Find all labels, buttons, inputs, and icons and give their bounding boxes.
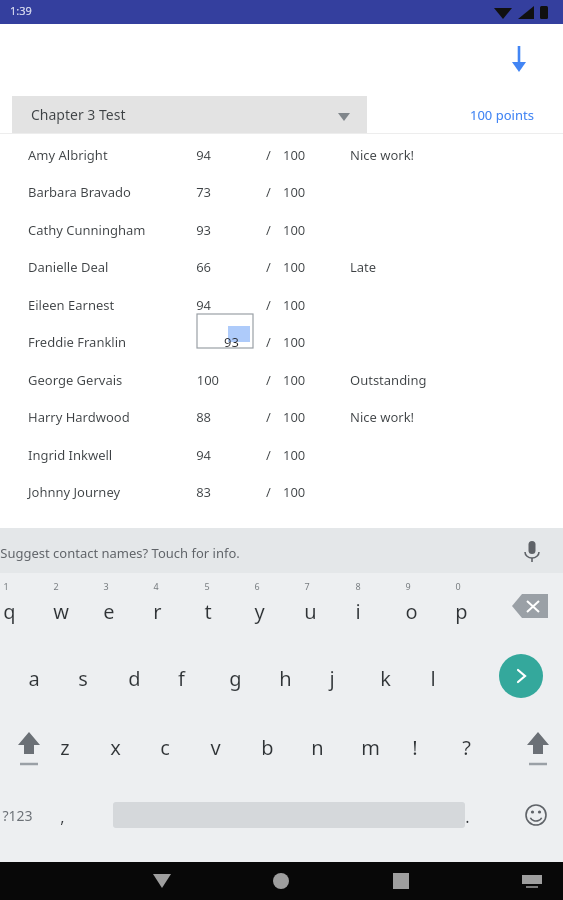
button[interactable] [226, 648, 276, 710]
button[interactable] [2, 790, 72, 840]
staticText: / [266, 483, 271, 501]
button[interactable]: Recents [379, 862, 423, 900]
button[interactable] [58, 790, 108, 840]
staticText: 93 [196, 221, 211, 239]
button[interactable] [101, 578, 151, 646]
staticText: 100 [283, 146, 306, 164]
staticText: / [266, 146, 271, 164]
button[interactable] [427, 648, 477, 710]
button[interactable] [459, 715, 509, 777]
button[interactable] [107, 715, 157, 777]
staticText: 100 [196, 371, 219, 389]
button[interactable] [75, 648, 125, 710]
staticText: d [128, 665, 141, 692]
staticText: a [28, 665, 40, 692]
staticText: Outstanding [350, 371, 427, 389]
button[interactable]: Switch keyboard [512, 862, 552, 900]
staticText: Danielle Deal [28, 258, 109, 276]
button[interactable] [402, 578, 452, 646]
staticText: s [78, 665, 88, 692]
staticText: Ingrid Inkwell [28, 446, 113, 464]
staticText: 9 [405, 580, 411, 592]
staticText: 6 [254, 580, 260, 592]
button[interactable] [25, 648, 75, 710]
button[interactable] [50, 578, 100, 646]
staticText: r [153, 598, 162, 625]
button[interactable] [0, 178, 563, 214]
button[interactable]: Enter [499, 654, 543, 698]
staticText: n [311, 734, 324, 761]
staticText: 1 [3, 580, 9, 592]
button[interactable]: Emoji [518, 797, 554, 833]
button[interactable] [201, 578, 251, 646]
staticText: p [455, 598, 468, 625]
staticText: Nice work! [350, 408, 415, 426]
button[interactable]: Delete [512, 593, 548, 619]
staticText: Suggest contact names? Touch for info. [0, 544, 240, 562]
button[interactable] [252, 578, 302, 646]
staticText: 100 [283, 483, 306, 501]
button[interactable]: Back [140, 862, 184, 900]
button[interactable] [12, 96, 367, 133]
button[interactable] [0, 328, 563, 364]
button[interactable] [57, 715, 107, 777]
staticText: j [329, 665, 335, 692]
button[interactable] [197, 314, 253, 348]
staticText: 66 [196, 258, 211, 276]
button[interactable] [453, 578, 503, 646]
staticText: k [380, 665, 391, 692]
staticText: 100 [283, 371, 306, 389]
button[interactable] [277, 648, 327, 710]
button[interactable]: Home [259, 862, 303, 900]
button[interactable]: Shift [9, 722, 49, 777]
staticText: f [178, 665, 185, 692]
button[interactable]: Shift [518, 722, 558, 777]
button[interactable] [0, 478, 563, 514]
button[interactable] [302, 578, 352, 646]
staticText: 94 [196, 296, 211, 314]
button[interactable]: Download grades [497, 36, 541, 80]
button[interactable] [309, 715, 359, 777]
button[interactable] [352, 578, 402, 646]
staticText: l [430, 665, 436, 692]
button[interactable] [0, 578, 50, 646]
staticText: 3 [103, 580, 109, 592]
staticText: 5 [204, 580, 210, 592]
staticText: u [304, 598, 317, 625]
staticText: 1:39 [10, 3, 32, 18]
button[interactable] [0, 291, 563, 327]
staticText: / [266, 221, 271, 239]
button[interactable] [258, 715, 308, 777]
button[interactable] [0, 216, 563, 252]
staticText: Nice work! [350, 146, 415, 164]
button[interactable] [208, 715, 258, 777]
staticText: , [60, 806, 65, 828]
button[interactable] [377, 648, 427, 710]
button[interactable] [126, 648, 176, 710]
staticText: Eileen Earnest [28, 296, 115, 314]
staticText: t [204, 598, 212, 625]
button[interactable] [176, 648, 226, 710]
button[interactable] [327, 648, 377, 710]
button[interactable] [0, 253, 563, 289]
staticText: 100 [283, 408, 306, 426]
staticText: ? [462, 734, 471, 761]
button[interactable] [0, 141, 563, 177]
button[interactable] [151, 578, 201, 646]
button[interactable]: Voice input [518, 537, 546, 565]
button[interactable] [0, 366, 563, 402]
button[interactable] [0, 528, 563, 573]
staticText: 88 [196, 408, 211, 426]
staticText: v [210, 734, 221, 761]
button[interactable] [409, 715, 459, 777]
staticText: m [361, 734, 380, 761]
staticText: / [266, 333, 271, 351]
button[interactable] [465, 790, 510, 840]
staticText: 93 [224, 333, 239, 351]
button[interactable] [0, 403, 563, 439]
staticText: 7 [304, 580, 310, 592]
button[interactable] [359, 715, 409, 777]
button[interactable] [0, 441, 563, 477]
button[interactable] [158, 715, 208, 777]
